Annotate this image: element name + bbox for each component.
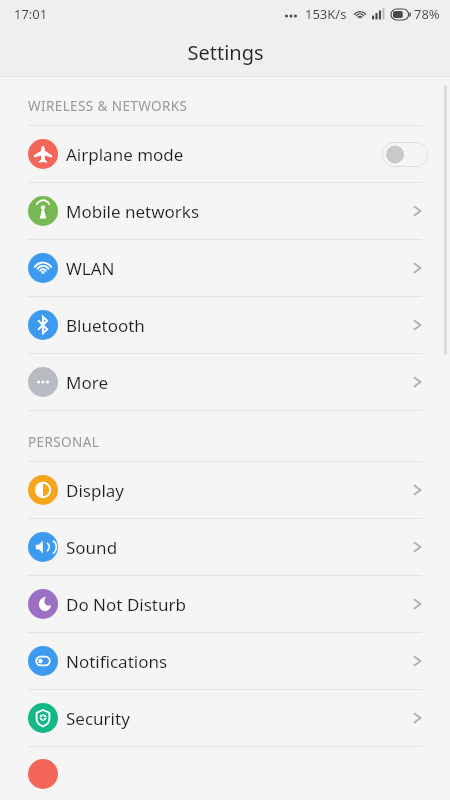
staticText: WIRELESS & NETWORKS xyxy=(28,97,188,115)
other: WLAN xyxy=(408,258,428,278)
button[interactable]: Do Not Disturb xyxy=(0,576,450,632)
other: Display xyxy=(408,480,428,500)
button[interactable]: Notifications xyxy=(0,633,450,689)
staticText: Display xyxy=(66,479,408,502)
button[interactable]: Bluetooth xyxy=(0,297,450,353)
other: Mobile networks xyxy=(408,201,428,221)
button[interactable]: Mobile networks xyxy=(0,183,450,239)
button[interactable]: More xyxy=(0,354,450,410)
staticText: Airplane mode xyxy=(66,143,382,166)
button[interactable]: Security xyxy=(0,690,450,746)
staticText: Sound xyxy=(66,536,408,559)
staticText: Mobile networks xyxy=(66,200,408,223)
staticText: Do Not Disturb xyxy=(66,593,408,616)
other: More xyxy=(408,372,428,392)
staticText: 17:01 xyxy=(14,5,48,23)
other: Security xyxy=(408,708,428,728)
staticText: 78% xyxy=(414,5,440,23)
staticText: 153K/s xyxy=(305,5,347,23)
staticText: More xyxy=(66,371,408,394)
button[interactable]: Airplane mode toggle xyxy=(382,142,428,167)
other: Sound xyxy=(408,537,428,557)
staticText: Notifications xyxy=(66,650,408,673)
button[interactable]: Sound xyxy=(0,519,450,575)
staticText: Settings xyxy=(187,39,264,66)
button[interactable]: WLAN xyxy=(0,240,450,296)
staticText: Bluetooth xyxy=(66,314,408,337)
other: Notifications xyxy=(408,651,428,671)
staticText: PERSONAL xyxy=(28,433,100,451)
button[interactable]: Airplane mode xyxy=(0,126,450,182)
other: Bluetooth xyxy=(408,315,428,335)
other: Do Not Disturb xyxy=(408,594,428,614)
staticText: WLAN xyxy=(66,257,408,280)
staticText: Security xyxy=(66,707,408,730)
button[interactable]: Display xyxy=(0,462,450,518)
